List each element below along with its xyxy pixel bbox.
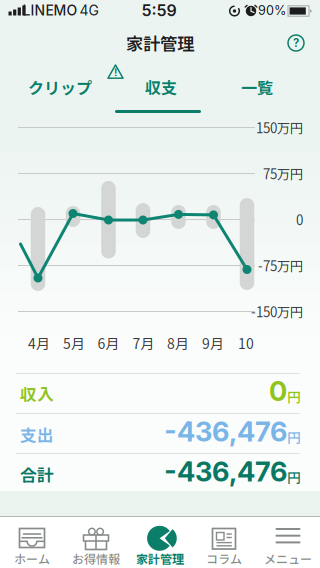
staticText: 75万円 bbox=[263, 164, 303, 183]
staticText: 0 bbox=[296, 210, 303, 229]
staticText: -436,476 bbox=[164, 415, 287, 448]
staticText: 家計管理 bbox=[136, 550, 184, 567]
button[interactable]: 収支 bbox=[116, 70, 206, 104]
staticText: 円 bbox=[287, 386, 301, 406]
staticText: 90% bbox=[258, 3, 286, 18]
staticText: 10 bbox=[238, 333, 254, 353]
staticText: お得情報 bbox=[72, 550, 120, 567]
button[interactable]: クリップ bbox=[15, 70, 105, 104]
staticText: コラム bbox=[206, 550, 242, 567]
staticText: ホーム bbox=[14, 550, 50, 567]
staticText: -150万円 bbox=[251, 302, 303, 321]
staticText: 円 bbox=[287, 467, 301, 487]
staticText: -75万円 bbox=[258, 256, 303, 275]
button[interactable]: お得情報 bbox=[64, 517, 128, 568]
staticText: 7月 bbox=[132, 333, 154, 353]
staticText: 一覧 bbox=[241, 75, 273, 99]
staticText: 9月 bbox=[202, 333, 224, 353]
staticText: 4月 bbox=[28, 333, 50, 353]
staticText: 8月 bbox=[167, 333, 189, 353]
staticText: ! bbox=[114, 66, 117, 79]
staticText: 収支 bbox=[145, 75, 177, 99]
button[interactable]: メニュー bbox=[256, 517, 320, 568]
staticText: LINEMO bbox=[22, 2, 77, 19]
staticText: 5:59 bbox=[141, 1, 176, 20]
button[interactable]: 一覧 bbox=[212, 70, 302, 104]
staticText: 円 bbox=[287, 427, 301, 447]
staticText: 合計 bbox=[20, 462, 54, 486]
staticText: 150万円 bbox=[256, 118, 303, 137]
staticText: ? bbox=[293, 36, 299, 50]
staticText: メニュー bbox=[264, 550, 312, 567]
button[interactable]: 家計管理 bbox=[128, 517, 192, 568]
button[interactable]: コラム bbox=[192, 517, 256, 568]
staticText: 4G bbox=[79, 2, 98, 19]
button[interactable]: ヘルプ bbox=[285, 32, 307, 54]
staticText: 支出 bbox=[20, 422, 54, 446]
staticText: 5月 bbox=[63, 333, 85, 353]
staticText: -436,476 bbox=[164, 455, 287, 488]
staticText: 収入 bbox=[20, 382, 54, 406]
staticText: クリップ bbox=[28, 75, 92, 99]
button[interactable]: ホーム bbox=[0, 517, 64, 568]
staticText: 家計管理 bbox=[126, 30, 194, 56]
staticText: 6月 bbox=[97, 333, 119, 353]
staticText: 0 bbox=[269, 374, 287, 408]
